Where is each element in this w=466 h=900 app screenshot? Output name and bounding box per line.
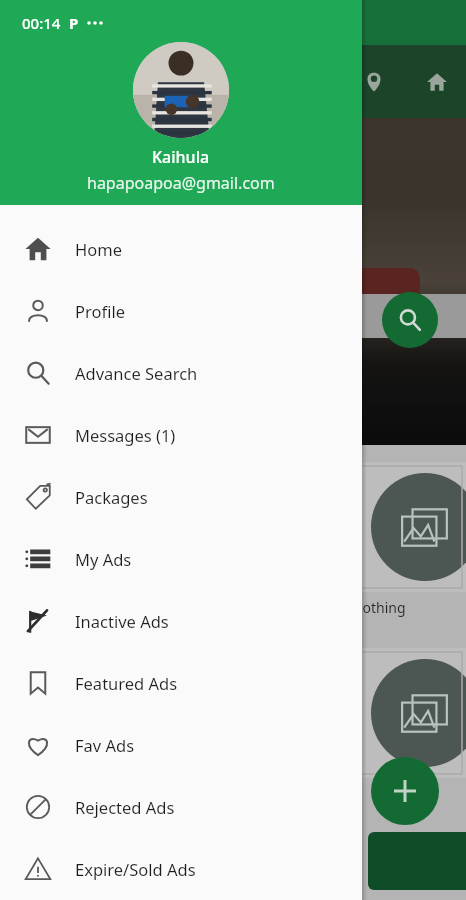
button[interactable]: [300, 462, 466, 592]
button[interactable]: Search: [382, 292, 438, 348]
staticText: Advance Search: [75, 362, 198, 384]
button[interactable]: Profile: [0, 280, 362, 342]
staticText: Profile: [75, 300, 125, 322]
button[interactable]: Featured Ads: [0, 652, 362, 714]
staticText: My Ads: [75, 548, 132, 570]
staticText: P: [69, 13, 79, 33]
staticText: Inactive Ads: [75, 610, 169, 632]
button[interactable]: Expire/Sold Ads: [0, 838, 362, 900]
button[interactable]: Messages (1): [0, 404, 362, 466]
button[interactable]: Home: [0, 218, 362, 280]
staticText: Rejected Ads: [75, 796, 175, 818]
staticText: hapapoapoa@gmail.com: [87, 172, 275, 194]
staticText: Messages (1): [75, 424, 176, 446]
button[interactable]: Inactive Ads: [0, 590, 362, 652]
staticText: Featured Ads: [75, 672, 178, 694]
staticText: Clothing: [350, 598, 406, 617]
button[interactable]: Home: [421, 66, 453, 98]
button[interactable]: Add advert: [371, 757, 439, 825]
staticText: 00:14: [22, 13, 61, 33]
staticText: Packages: [75, 486, 148, 508]
button[interactable]: [368, 832, 466, 890]
button[interactable]: Location: [358, 66, 390, 98]
button[interactable]: Packages: [0, 466, 362, 528]
staticText: Expire/Sold Ads: [75, 858, 196, 880]
button[interactable]: Fav Ads: [0, 714, 362, 776]
button[interactable]: [300, 648, 466, 778]
button[interactable]: Advance Search: [0, 342, 362, 404]
button[interactable]: Rejected Ads: [0, 776, 362, 838]
button[interactable]: [133, 42, 229, 138]
button[interactable]: My Ads: [0, 528, 362, 590]
staticText: Kaihula: [152, 146, 210, 168]
staticText: Fav Ads: [75, 734, 135, 756]
staticText: Home: [75, 238, 122, 260]
